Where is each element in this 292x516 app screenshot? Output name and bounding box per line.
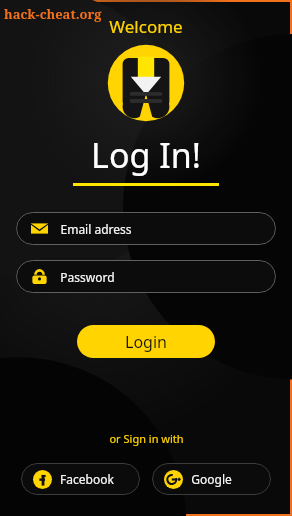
staticText: Email adress xyxy=(60,221,132,237)
button[interactable]: Google xyxy=(152,463,271,495)
other: Email xyxy=(31,220,48,237)
button[interactable]: Login xyxy=(77,325,215,358)
staticText: Password xyxy=(60,269,115,285)
staticText: or Sign in with xyxy=(109,431,184,446)
staticText: Login xyxy=(125,331,167,353)
staticText: Welcome xyxy=(109,15,183,38)
staticText: Google xyxy=(191,471,232,487)
button[interactable]: Password xyxy=(16,260,276,293)
staticText: Facebook xyxy=(60,471,114,487)
other: Password xyxy=(31,268,48,285)
button[interactable]: Facebook xyxy=(21,463,140,495)
staticText: Log In! xyxy=(91,132,201,178)
staticText: hack-cheat.org xyxy=(4,5,102,23)
button[interactable]: Email xyxy=(16,212,276,245)
